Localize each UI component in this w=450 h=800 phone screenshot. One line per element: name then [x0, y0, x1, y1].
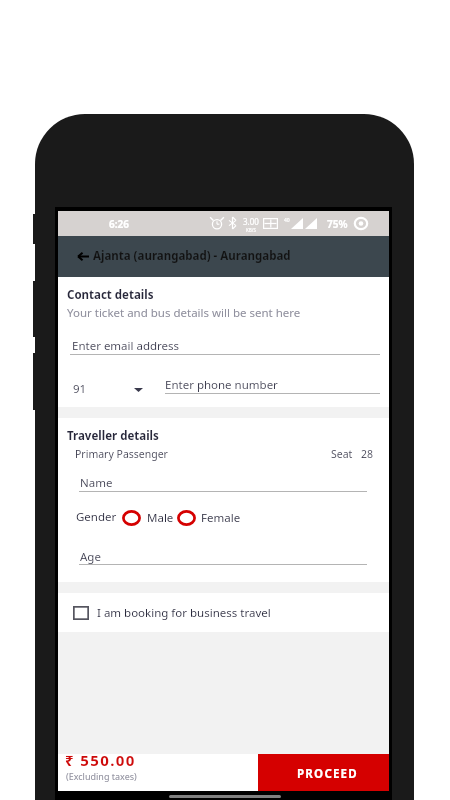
staticText: PROCEED	[297, 766, 358, 782]
staticText: ₹ 550.00	[65, 750, 136, 770]
staticText: 40	[284, 217, 290, 224]
staticText: Primary Passenger	[75, 447, 168, 461]
button[interactable]: PROCEED	[258, 754, 389, 791]
staticText: 3.00	[243, 216, 259, 227]
staticText: 6:26	[109, 217, 129, 231]
staticText: Name	[80, 475, 113, 491]
staticText: Female	[201, 510, 241, 526]
staticText: Traveller details	[67, 428, 159, 444]
staticText: KB/S	[246, 227, 256, 233]
staticText: 28	[361, 447, 374, 461]
staticText: 75%	[327, 217, 348, 231]
staticText: Gender	[76, 509, 117, 525]
button[interactable]: Back	[72, 245, 94, 267]
staticText: Enter phone number	[165, 377, 278, 393]
staticText: I am booking for business travel	[97, 605, 271, 621]
staticText: Seat	[331, 447, 353, 461]
button[interactable]: I am booking for business travel	[58, 593, 389, 632]
button[interactable]: Female	[177, 508, 236, 528]
staticText: Contact details	[67, 287, 154, 303]
button[interactable]: Country code	[70, 375, 165, 399]
staticText: Age	[80, 549, 101, 565]
staticText: Your ticket and bus details will be sent…	[67, 305, 301, 321]
button[interactable]: Male	[122, 508, 168, 528]
staticText: (Excluding taxes)	[66, 770, 137, 782]
staticText: Ajanta (aurangabad) - Aurangabad	[93, 248, 291, 264]
staticText: 91	[73, 381, 87, 397]
staticText: Male	[147, 510, 174, 526]
staticText: Enter email address	[72, 338, 180, 354]
